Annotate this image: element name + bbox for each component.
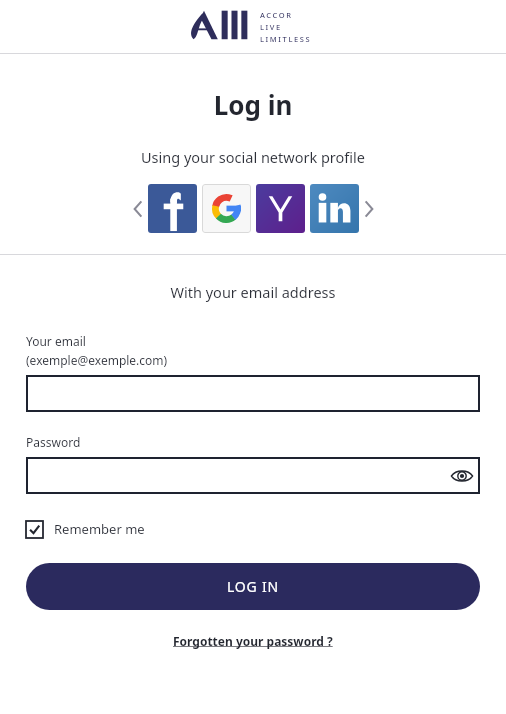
staticText: Your email: [26, 333, 86, 349]
staticText: ACCOR: [260, 10, 293, 20]
button[interactable]: Previous: [128, 189, 148, 229]
button[interactable]: Log in with LinkedIn: [310, 184, 359, 233]
staticText: (exemple@exemple.com): [26, 352, 168, 368]
staticText: LIMITLESS: [260, 34, 312, 44]
staticText: Remember me: [54, 520, 145, 538]
button[interactable]: Show password: [444, 458, 480, 493]
staticText: With your email address: [0, 282, 506, 302]
button[interactable]: Forgotten your password ?: [173, 633, 333, 649]
button[interactable]: Next: [359, 189, 379, 229]
staticText: Password: [26, 434, 81, 450]
staticText: Using your social network profile: [0, 147, 506, 167]
button[interactable]: [26, 375, 480, 412]
button[interactable]: LOG IN: [26, 563, 480, 610]
staticText: LIVE: [260, 22, 282, 32]
staticText: Log in: [0, 87, 506, 122]
staticText: LOG IN: [227, 577, 280, 596]
button[interactable]: Remember me: [26, 520, 145, 538]
button[interactable]: Log in with Facebook: [148, 184, 197, 233]
button[interactable]: Log in with Yahoo: [256, 184, 305, 233]
button[interactable]: Log in with Google: [202, 184, 251, 233]
button[interactable]: Show password: [26, 457, 480, 494]
